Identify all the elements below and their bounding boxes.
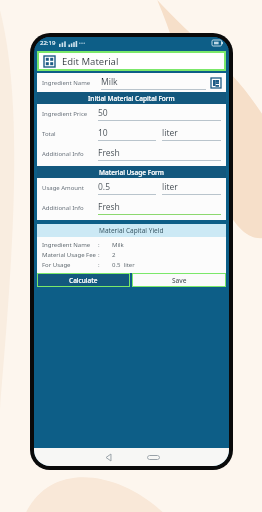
staticText: Milk <box>112 241 124 249</box>
button[interactable]: Additional Info <box>42 144 221 164</box>
button[interactable]: Calculate <box>38 274 129 286</box>
staticText: Material Usage Fee <box>42 251 97 259</box>
staticText: Material Capital Yield <box>99 226 164 235</box>
button[interactable]: Home <box>142 449 164 465</box>
staticText: 2 <box>112 251 116 259</box>
staticText: 22:19 <box>40 39 56 47</box>
staticText: Ingredient Name <box>42 79 91 87</box>
staticText: Material Usage Form <box>99 168 165 177</box>
staticText: Fresh <box>98 201 120 213</box>
staticText: liter <box>162 127 178 139</box>
staticText: Additional Info <box>42 204 84 212</box>
staticText: Calculate <box>69 276 98 285</box>
staticText: Additional Info <box>42 150 84 158</box>
button[interactable]: Ingredient Price <box>42 104 221 124</box>
staticText: For Usage <box>42 261 71 269</box>
staticText: Fresh <box>98 147 120 159</box>
staticText: 0.5 <box>98 181 111 193</box>
staticText: : <box>98 241 100 249</box>
staticText: 10 <box>98 127 108 139</box>
button[interactable]: Ingredient Name <box>42 73 221 92</box>
staticText: liter <box>162 181 178 193</box>
staticText: : <box>98 261 100 269</box>
staticText: 50 <box>98 107 108 119</box>
staticText: Milk <box>101 76 118 88</box>
staticText: Usage Amount <box>42 184 84 192</box>
staticText: 0.5 liter <box>112 261 135 269</box>
staticText: Save <box>172 276 187 285</box>
button[interactable]: Usage Amount <box>42 178 221 198</box>
button[interactable]: Save <box>133 274 225 286</box>
button[interactable]: Back <box>100 449 116 465</box>
button[interactable]: Total <box>42 124 221 144</box>
staticText: Ingredient Price <box>42 110 88 118</box>
button[interactable]: Material grid <box>39 53 224 69</box>
staticText: Edit Material <box>62 55 119 68</box>
staticText: Ingredient Name <box>42 241 91 249</box>
staticText: Initial Material Capital Form <box>88 94 175 103</box>
other: Material grid <box>44 56 55 67</box>
staticText: Total <box>42 130 56 138</box>
button[interactable]: Additional Info <box>42 198 221 218</box>
staticText: : <box>98 251 100 259</box>
button[interactable]: Pick ingredient <box>211 78 221 88</box>
